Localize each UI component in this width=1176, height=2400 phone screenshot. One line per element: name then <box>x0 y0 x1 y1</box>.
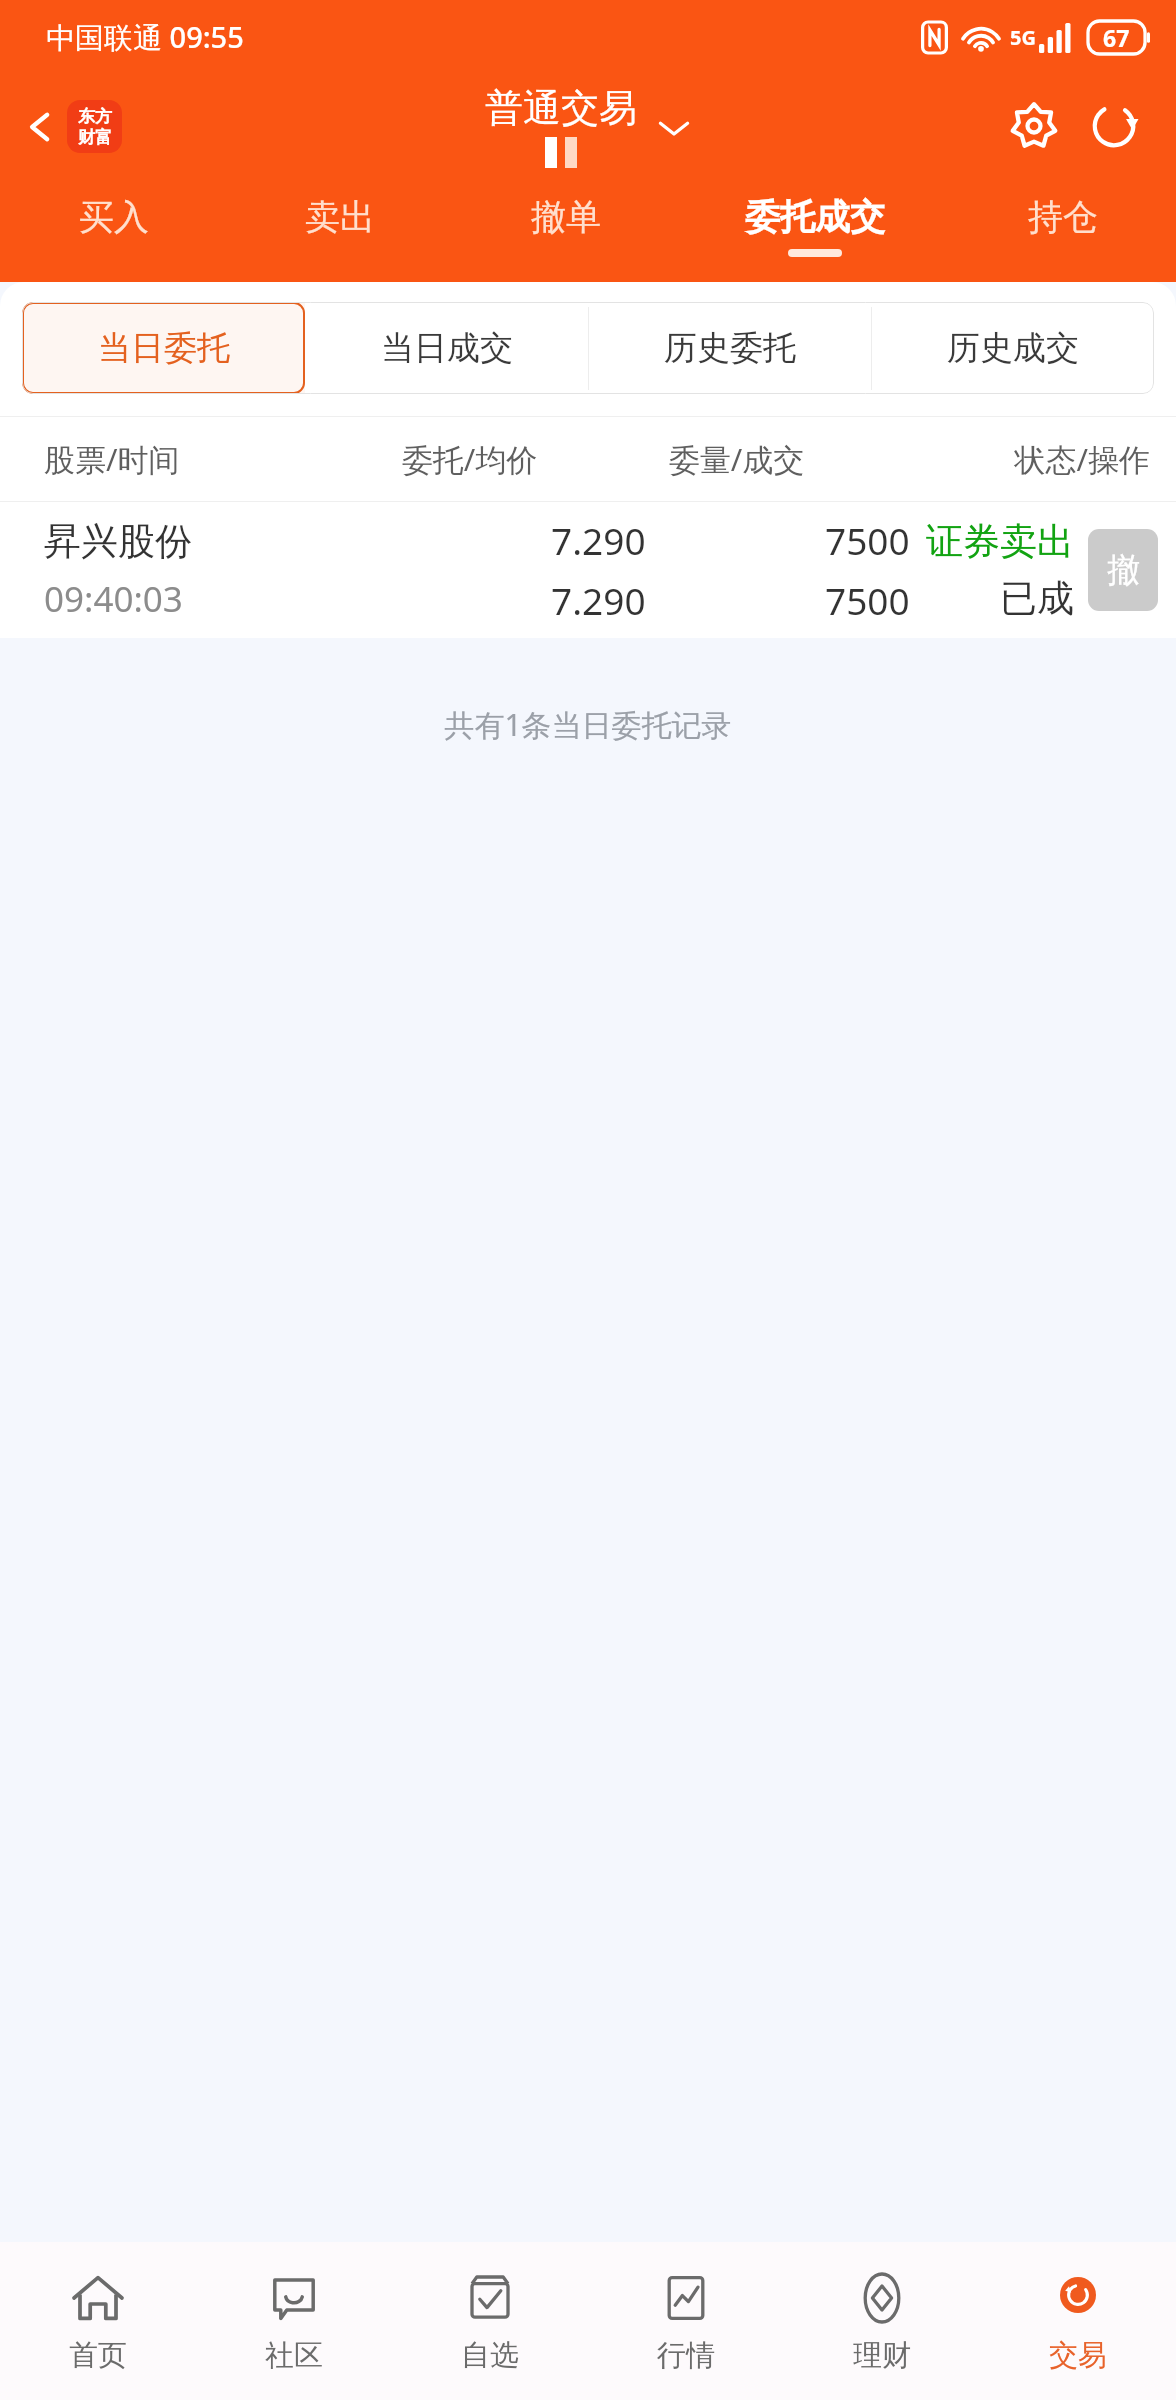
button[interactable]: 买入 <box>0 178 227 274</box>
staticText: 东方 <box>78 106 112 127</box>
button[interactable]: 交易 <box>980 2242 1176 2400</box>
staticText: 当日成交 <box>381 327 513 369</box>
button[interactable]: 昇兴股份 <box>0 502 1176 638</box>
button[interactable]: 理财 <box>784 2242 980 2400</box>
button[interactable]: 社区 <box>196 2242 392 2400</box>
button[interactable]: 撤单 <box>453 178 679 274</box>
staticText: 委托/均价 <box>336 438 603 480</box>
button[interactable]: 历史委托 <box>588 302 871 394</box>
staticText: 状态/操作 <box>870 438 1150 480</box>
button[interactable]: 持仓 <box>950 178 1176 274</box>
button[interactable]: 首页 <box>0 2242 196 2400</box>
staticText: 证券卖出 <box>926 518 1074 565</box>
staticText: 社区 <box>265 2337 323 2374</box>
staticText: 历史成交 <box>947 327 1079 369</box>
staticText: 7.290 <box>551 515 646 565</box>
button[interactable]: 刷新 <box>1082 94 1146 158</box>
staticText: 首页 <box>69 2337 127 2374</box>
staticText: 5G <box>1010 24 1036 51</box>
staticText: 中国联通 09:55 <box>46 17 244 57</box>
staticText: 67 <box>1103 22 1130 53</box>
staticText: 撤 <box>1107 549 1140 591</box>
staticText: 委托成交 <box>745 195 885 239</box>
staticText: 行情 <box>657 2337 715 2374</box>
staticText: 撤单 <box>531 195 601 239</box>
button[interactable]: 普通交易 <box>485 84 691 168</box>
button[interactable]: 卖出 <box>227 178 453 274</box>
staticText: 已成 <box>1000 575 1074 622</box>
button[interactable]: 委托成交 <box>679 178 950 274</box>
button[interactable]: 当日委托 <box>22 302 305 394</box>
staticText: 持仓 <box>1028 195 1098 239</box>
button[interactable]: 当日成交 <box>305 302 588 394</box>
staticText: 普通交易 <box>485 84 637 132</box>
staticText: 7500 <box>825 575 910 625</box>
staticText: 7500 <box>825 515 910 565</box>
button[interactable]: 返回 东方财富 <box>14 94 130 159</box>
staticText: 自选 <box>461 2337 519 2374</box>
staticText: 卖出 <box>305 195 375 239</box>
staticText: 股票/时间 <box>44 438 336 480</box>
button[interactable]: 自选 <box>392 2242 588 2400</box>
staticText: 7.290 <box>551 575 646 625</box>
button[interactable]: 历史成交 <box>871 302 1154 394</box>
staticText: 历史委托 <box>664 327 796 369</box>
staticText: 09:40:03 <box>44 575 183 623</box>
staticText: 买入 <box>79 195 149 239</box>
staticText: 财富 <box>78 127 112 148</box>
staticText: 理财 <box>853 2337 911 2374</box>
button[interactable]: 撤 <box>1088 529 1158 611</box>
staticText: 当日委托 <box>98 327 230 369</box>
staticText: 共有1条当日委托记录 <box>0 704 1176 745</box>
staticText: 昇兴股份 <box>44 518 192 565</box>
staticText: 交易 <box>1049 2337 1107 2374</box>
staticText: 委量/成交 <box>603 438 870 480</box>
button[interactable]: 行情 <box>588 2242 784 2400</box>
button[interactable]: 设置 <box>1002 94 1066 158</box>
